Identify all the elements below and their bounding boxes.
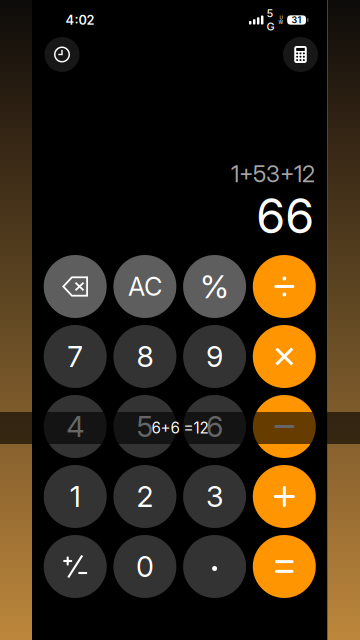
button[interactable] <box>183 535 246 598</box>
staticText: 1 <box>70 479 81 514</box>
staticText: 4:02 <box>65 12 94 28</box>
button[interactable]: 8 <box>113 325 176 388</box>
staticText: 9 <box>206 339 223 374</box>
button[interactable]: 6 <box>183 395 246 458</box>
button[interactable]: 9 <box>183 325 246 388</box>
button[interactable]: 4 <box>44 395 107 458</box>
staticText: 1+53+12 <box>231 160 315 188</box>
staticText: 5G <box>267 7 275 33</box>
button[interactable] <box>253 395 316 458</box>
button[interactable]: Calculator <box>283 37 318 72</box>
staticText: 66 <box>256 187 314 245</box>
staticText: % <box>200 267 229 306</box>
button[interactable] <box>44 535 107 598</box>
staticText: AC <box>128 271 162 302</box>
button[interactable]: 2 <box>113 465 176 528</box>
button[interactable] <box>253 535 316 598</box>
button[interactable] <box>253 465 316 528</box>
button[interactable]: 7 <box>44 325 107 388</box>
button[interactable]: History <box>44 37 79 72</box>
button[interactable]: 0 <box>113 535 176 598</box>
staticText: 31 <box>292 15 302 25</box>
staticText: W <box>279 19 284 25</box>
staticText: 0 <box>136 549 154 584</box>
staticText: U <box>280 15 283 20</box>
staticText: 3 <box>206 479 223 514</box>
button[interactable] <box>253 255 316 318</box>
button[interactable] <box>44 255 107 318</box>
staticText: 2 <box>136 479 153 514</box>
button[interactable]: 1 <box>44 465 107 528</box>
button[interactable] <box>253 325 316 388</box>
staticText: 6+6 =12 <box>151 419 208 437</box>
staticText: 5 <box>136 409 153 444</box>
staticText: 4 <box>66 409 84 444</box>
button[interactable]: AC <box>113 255 176 318</box>
button[interactable]: % <box>183 255 246 318</box>
staticText: 6 <box>206 409 223 444</box>
button[interactable]: 5 <box>113 395 176 458</box>
staticText: 8 <box>136 339 153 374</box>
button[interactable]: 3 <box>183 465 246 528</box>
staticText: 7 <box>67 339 83 374</box>
